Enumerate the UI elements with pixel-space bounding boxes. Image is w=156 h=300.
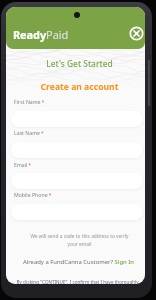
staticText: We will send a code to this address to v… — [26, 233, 133, 247]
staticText: Already a FundCanna Customer? Sign In — [23, 258, 135, 266]
staticText: First Name * — [14, 98, 45, 105]
staticText: Mobile Phone * — [14, 191, 52, 198]
button[interactable]: Already a FundCanna Customer? Sign In — [9, 257, 145, 267]
button[interactable]: Close — [128, 25, 144, 41]
staticText: ReadyPaid — [13, 27, 69, 42]
staticText: Create an account — [10, 81, 145, 93]
staticText: By clicking "CONTINUE", I confirm that I… — [11, 279, 144, 284]
staticText: Let's Get Started — [10, 58, 145, 69]
staticText: Email * — [14, 161, 31, 168]
staticText: Last Name * — [14, 129, 44, 136]
